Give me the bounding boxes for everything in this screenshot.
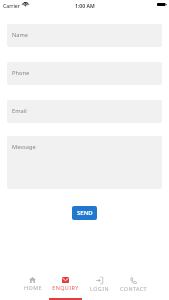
button[interactable]: Message bbox=[7, 136, 162, 189]
button[interactable]: Email bbox=[7, 100, 162, 123]
staticText: CONTACT bbox=[120, 285, 147, 292]
staticText: HOME bbox=[24, 284, 42, 291]
staticText: LOGIN bbox=[90, 285, 109, 292]
button[interactable]: CONTACT bbox=[116, 263, 150, 300]
button[interactable]: ENQUIRY bbox=[49, 263, 82, 300]
staticText: 1:00 AM bbox=[75, 3, 95, 10]
staticText: Message bbox=[12, 143, 36, 151]
button[interactable]: HOME bbox=[16, 263, 49, 300]
staticText: Name bbox=[12, 31, 29, 39]
staticText: Email bbox=[12, 107, 27, 115]
staticText: Carrier bbox=[3, 3, 20, 10]
staticText: Phone bbox=[12, 69, 30, 77]
button[interactable]: SEND bbox=[72, 206, 97, 220]
button[interactable]: Phone bbox=[7, 62, 162, 85]
staticText: SEND bbox=[77, 209, 93, 217]
button[interactable]: LOGIN bbox=[82, 263, 116, 300]
button[interactable]: Name bbox=[7, 24, 162, 47]
staticText: ENQUIRY bbox=[52, 284, 79, 291]
